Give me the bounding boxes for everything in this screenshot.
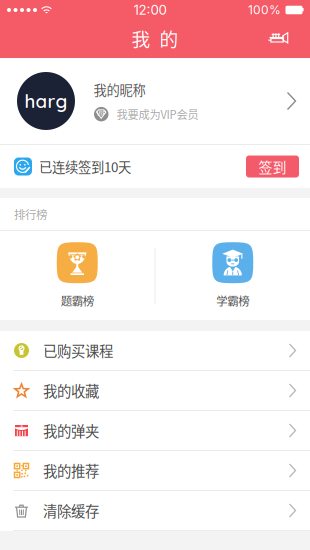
staticText: harg xyxy=(24,89,67,113)
staticText: VIP xyxy=(96,110,106,117)
button[interactable]: 公告 xyxy=(256,20,310,58)
staticText: 已连续签到10天 xyxy=(39,157,131,176)
staticText: 排行榜 xyxy=(14,206,47,222)
staticText: 我的收藏 xyxy=(43,380,99,401)
button[interactable]: 学霸榜 xyxy=(155,231,310,320)
staticText: 我要成为VIP会员 xyxy=(116,106,198,122)
button[interactable]: 签到 xyxy=(246,155,299,177)
staticText: 清除缓存 xyxy=(43,500,99,521)
button[interactable]: 题霸榜 xyxy=(0,231,154,320)
button[interactable]: 我的收藏 xyxy=(0,371,310,411)
staticText: 题霸榜 xyxy=(61,292,94,309)
button[interactable]: 我的弹夹 xyxy=(0,411,310,451)
staticText: 12:00 xyxy=(133,2,166,18)
button[interactable]: 我的推荐 xyxy=(0,451,310,491)
staticText: 签到 xyxy=(258,156,286,177)
button[interactable]: 已购买课程 xyxy=(0,331,310,371)
staticText: 我的弹夹 xyxy=(43,420,99,441)
staticText: 我的昵称 xyxy=(93,80,145,99)
staticText: 100% xyxy=(248,3,281,17)
staticText: 我的推荐 xyxy=(43,460,99,481)
staticText: 已购买课程 xyxy=(43,340,113,361)
button[interactable]: harg xyxy=(0,58,310,144)
staticText: 学霸榜 xyxy=(216,292,249,309)
staticText: 我 的 xyxy=(131,24,178,51)
button[interactable]: 清除缓存 xyxy=(0,491,310,531)
